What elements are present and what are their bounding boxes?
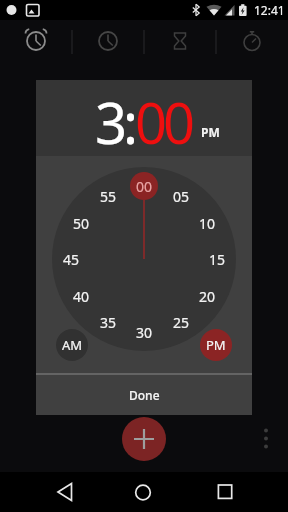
button[interactable] xyxy=(208,476,240,508)
button[interactable] xyxy=(0,20,72,64)
staticText: 12:41 xyxy=(254,2,285,18)
staticText: 25 xyxy=(173,313,190,332)
staticText: 10 xyxy=(199,214,216,233)
staticText: Done xyxy=(129,387,160,403)
staticText: 05 xyxy=(173,187,190,206)
button[interactable]: PM xyxy=(200,329,232,361)
button[interactable] xyxy=(122,417,166,461)
staticText: 30 xyxy=(136,323,153,342)
staticText: 40 xyxy=(73,287,90,306)
staticText: 50 xyxy=(73,214,90,233)
staticText: 20 xyxy=(199,287,216,306)
staticText: 55 xyxy=(100,187,117,206)
button[interactable] xyxy=(216,20,288,64)
staticText: PM xyxy=(206,336,226,354)
staticText: 45 xyxy=(63,250,80,269)
staticText: AM xyxy=(62,336,83,354)
staticText: 3: xyxy=(95,84,135,160)
staticText: PM xyxy=(201,124,220,140)
button[interactable]: AM xyxy=(56,329,88,361)
staticText: 15 xyxy=(209,250,226,269)
staticText: 00 xyxy=(135,84,192,160)
staticText: 00 xyxy=(136,177,153,196)
button[interactable] xyxy=(128,476,160,508)
button[interactable] xyxy=(48,476,80,508)
button[interactable]: Done xyxy=(36,375,252,415)
staticText: 35 xyxy=(100,313,117,332)
button[interactable] xyxy=(144,20,216,64)
button[interactable] xyxy=(72,20,144,64)
